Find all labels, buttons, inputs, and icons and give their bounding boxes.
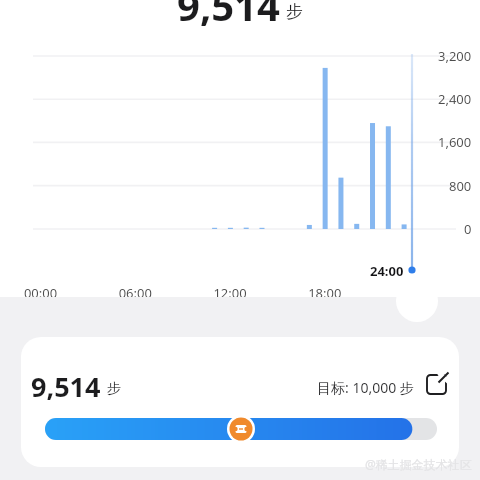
button[interactable] <box>20 336 460 458</box>
button[interactable]: Edit step goal <box>423 370 453 400</box>
button[interactable]: Expand details <box>396 280 438 322</box>
